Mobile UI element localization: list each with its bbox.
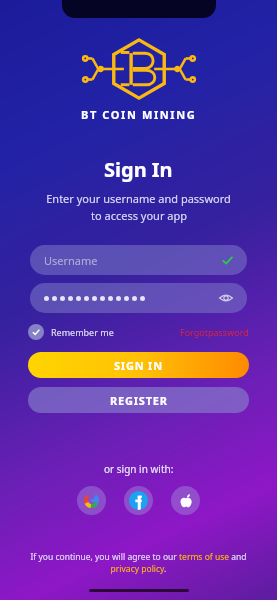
other: BT Coin Mining logo bbox=[80, 38, 198, 100]
button[interactable]: Sign in with Google bbox=[77, 486, 106, 515]
staticText: Username bbox=[44, 253, 222, 268]
button[interactable]: Forgotpassword bbox=[180, 326, 249, 338]
staticText: Sign In bbox=[104, 156, 173, 183]
button[interactable]: Username bbox=[30, 245, 247, 275]
button[interactable]: Sign in with Facebook bbox=[124, 486, 153, 515]
button[interactable]: Show password bbox=[30, 283, 247, 313]
button[interactable]: Show password bbox=[219, 291, 233, 305]
button[interactable]: REGISTER bbox=[28, 387, 249, 413]
staticText: Forgotpassword bbox=[180, 326, 249, 338]
staticText: Remember me bbox=[51, 326, 114, 338]
button[interactable]: Sign in with Apple bbox=[171, 486, 200, 515]
staticText: SIGN IN bbox=[114, 358, 163, 373]
staticText: to access your app bbox=[91, 208, 187, 223]
button[interactable]: Remember me bbox=[28, 324, 114, 340]
button[interactable]: If you continue, you will agree to our t… bbox=[30, 551, 247, 575]
staticText: BT COIN MINING bbox=[81, 107, 197, 122]
button[interactable]: SIGN IN bbox=[28, 352, 249, 378]
staticText: Enter your username and password bbox=[46, 191, 231, 206]
staticText: or sign in with: bbox=[104, 462, 174, 476]
staticText: REGISTER bbox=[110, 393, 168, 408]
